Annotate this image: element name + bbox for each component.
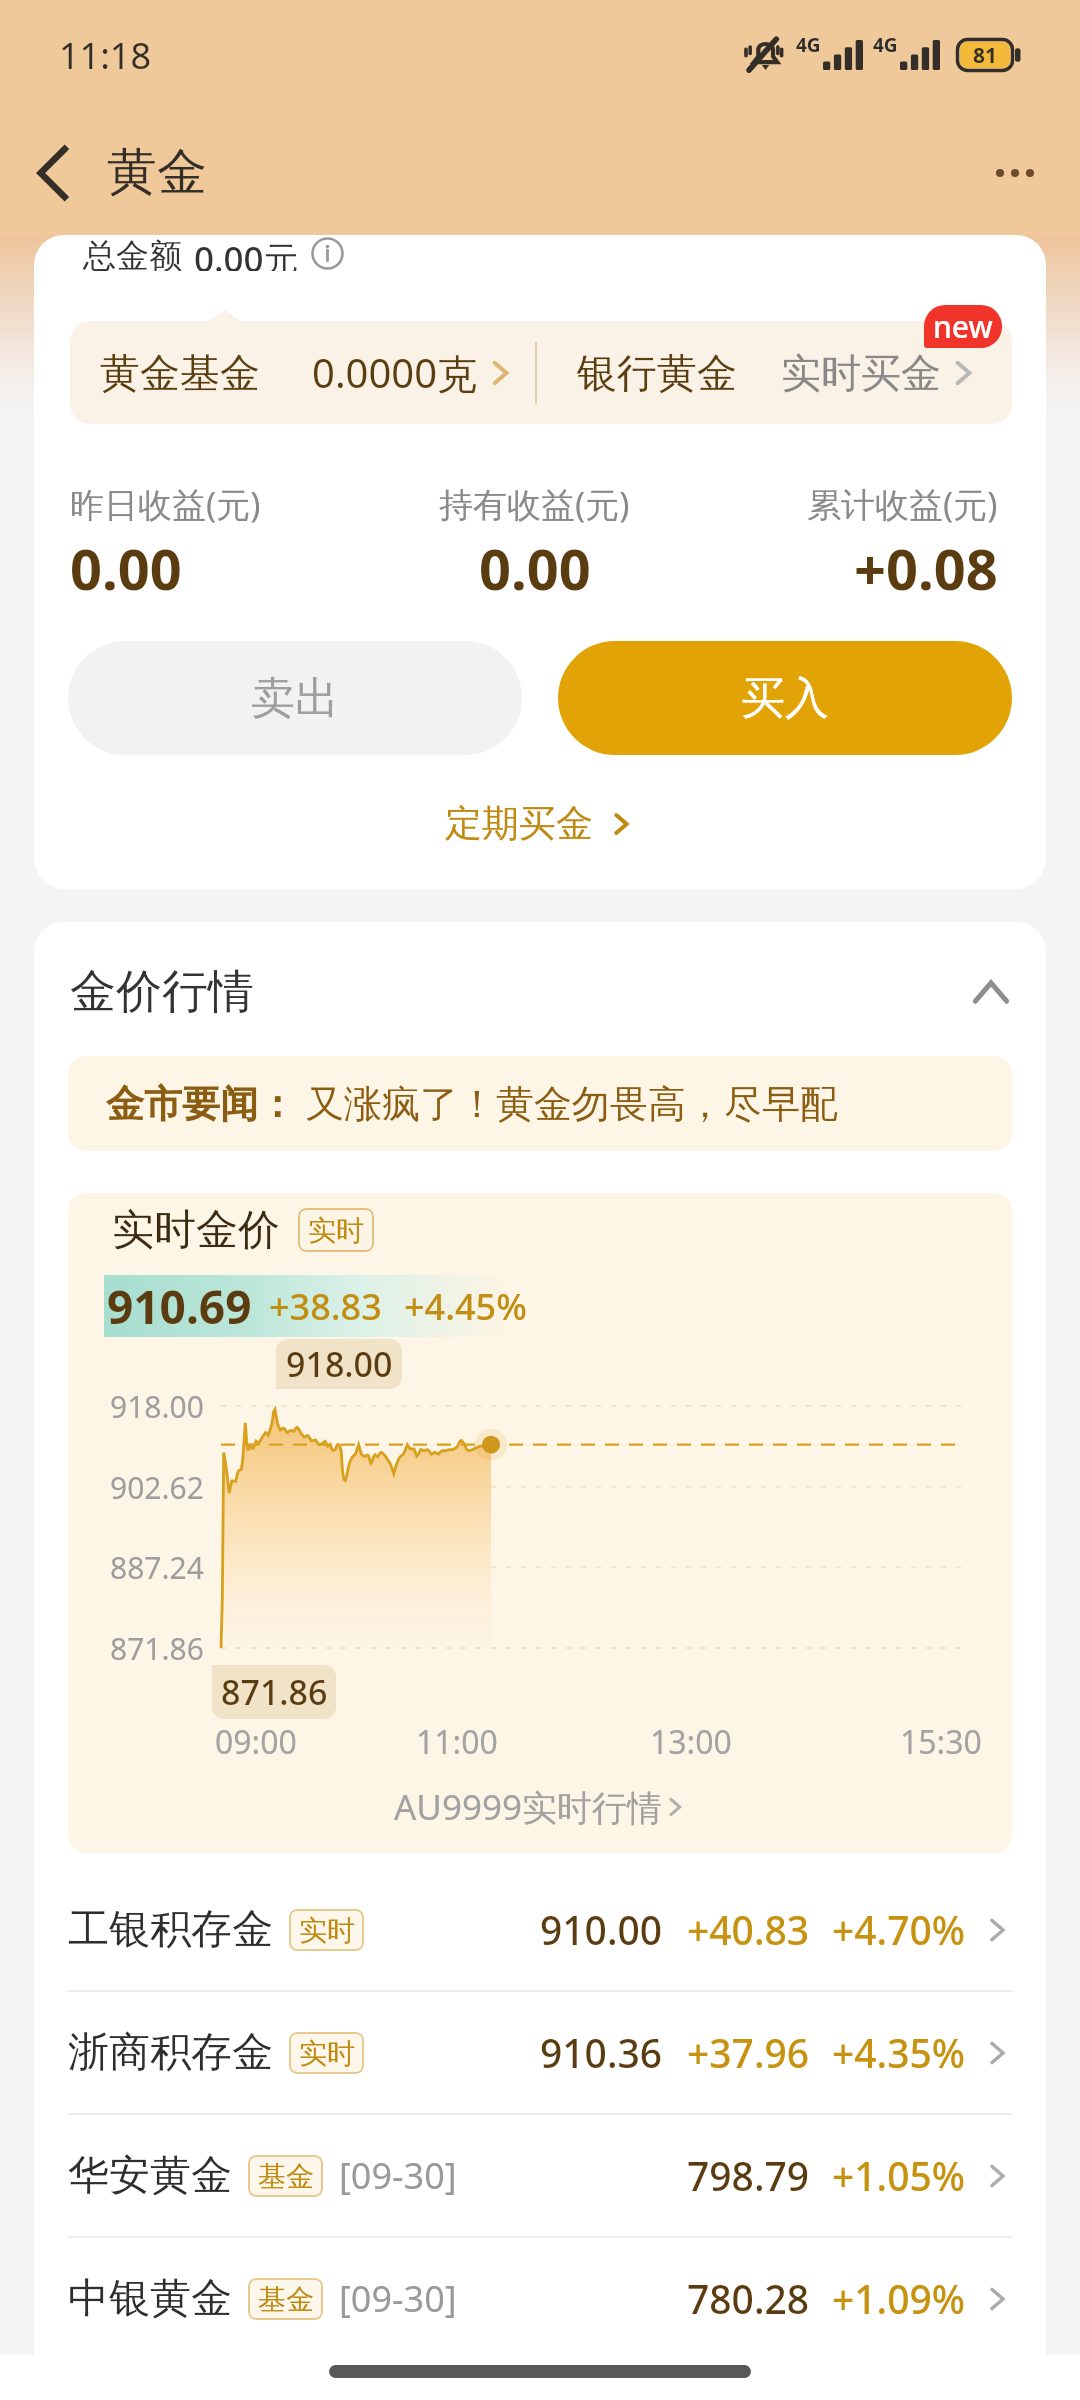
staticText: +37.96 [687, 2026, 810, 2079]
staticText: +0.08 [854, 530, 998, 606]
staticText: 13:00 [650, 1720, 732, 1761]
staticText: 871.86 [221, 1669, 328, 1715]
staticText: 黄金基金 [100, 348, 260, 398]
staticText: 871.86 [110, 1628, 204, 1669]
staticText: 卖出 [251, 671, 339, 726]
button[interactable]: Collapse [958, 954, 1024, 1030]
staticText: 黄金 [107, 141, 207, 204]
staticText: 918.00 [286, 1341, 393, 1387]
staticText: 持有收益(元) [439, 481, 630, 527]
staticText: 金市要闻： [106, 1080, 296, 1128]
staticText: 昨日收益(元) [70, 481, 261, 527]
staticText: 定期买金 [445, 800, 593, 847]
staticText: 实时 [308, 1213, 364, 1248]
staticText: 780.28 [687, 2272, 810, 2325]
staticText: +1.05% [832, 2149, 966, 2202]
staticText: 798.79 [687, 2149, 810, 2202]
staticText: new [933, 306, 993, 347]
button[interactable]: 中银黄金 [68, 2238, 1012, 2359]
staticText: 902.62 [110, 1467, 204, 1508]
staticText: 4G [873, 32, 898, 58]
staticText: 4G [796, 32, 821, 58]
staticText: +1.09% [832, 2272, 966, 2325]
staticText: 0.0000克 [312, 345, 478, 400]
staticText: 11:00 [416, 1720, 498, 1761]
staticText: 累计收益(元) [807, 481, 998, 527]
staticText: 0.00元 [194, 235, 299, 271]
button[interactable]: AU9999实时行情 [68, 1761, 1012, 1853]
staticText: 金价行情 [70, 963, 254, 1021]
staticText: 工银积存金 [68, 1904, 273, 1956]
button[interactable]: 银行黄金 [537, 348, 1012, 398]
staticText: 总金额 [83, 235, 182, 271]
button[interactable]: More options [960, 118, 1070, 228]
staticText: +4.35% [832, 2026, 966, 2079]
staticText: 0.00 [70, 530, 182, 606]
staticText: 银行黄金 [577, 348, 737, 398]
button[interactable]: 黄金基金 [70, 345, 535, 400]
button[interactable]: 买入 [558, 641, 1012, 755]
staticText: 基金 [258, 2282, 314, 2317]
staticText: +4.70% [832, 1903, 966, 1956]
button[interactable]: 工银积存金 [68, 1869, 1012, 1990]
button[interactable]: 浙商积存金 [68, 1992, 1012, 2113]
staticText: +38.83 [269, 1282, 382, 1331]
staticText: AU9999实时行情 [394, 1783, 663, 1831]
staticText: 基金 [258, 2159, 314, 2194]
staticText: [09-30] [339, 2274, 457, 2323]
button[interactable]: 定期买金 [34, 796, 1046, 851]
staticText: 实时 [299, 2036, 355, 2071]
staticText: 910.00 [540, 1903, 663, 1956]
button[interactable]: 卖出 [68, 641, 522, 755]
staticText: 买入 [741, 671, 829, 726]
staticText: 华安黄金 [68, 2150, 232, 2202]
staticText: 中银黄金 [68, 2273, 232, 2325]
staticText: [09-30] [339, 2151, 457, 2200]
staticText: 实时金价 [112, 1204, 280, 1256]
staticText: 887.24 [110, 1547, 204, 1588]
button[interactable]: About total amount [305, 235, 350, 271]
staticText: 11:18 [59, 31, 152, 80]
staticText: 实时买金 [781, 348, 941, 398]
staticText: +4.45% [404, 1282, 527, 1331]
staticText: 918.00 [110, 1386, 204, 1427]
staticText: +40.83 [687, 1903, 810, 1956]
staticText: 910.36 [540, 2026, 663, 2079]
staticText: 81 [973, 41, 998, 70]
staticText: 15:30 [900, 1720, 982, 1761]
staticText: 910.69 [107, 1275, 252, 1337]
button[interactable]: 华安黄金 [68, 2115, 1012, 2236]
staticText: 实时 [299, 1913, 355, 1948]
button[interactable]: 金市要闻： [68, 1056, 1012, 1151]
staticText: 0.00 [479, 530, 591, 606]
staticText: 又涨疯了！黄金勿畏高，尽早配 [306, 1080, 838, 1128]
staticText: 09:00 [215, 1720, 297, 1761]
button[interactable]: Back [4, 118, 100, 228]
staticText: 浙商积存金 [68, 2027, 273, 2079]
